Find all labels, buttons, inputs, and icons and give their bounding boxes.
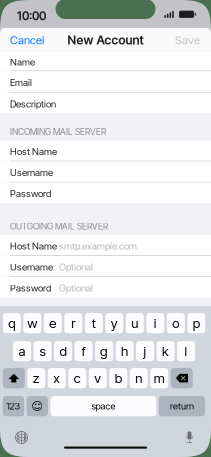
staticText: t <box>92 315 96 331</box>
staticText: smtp.example.com <box>59 240 137 252</box>
button[interactable]: a <box>13 341 31 361</box>
button[interactable]: e <box>44 313 62 333</box>
button[interactable]: f <box>75 341 93 361</box>
staticText: New Account <box>67 33 143 47</box>
staticText: OUTGOING MAIL SERVER <box>10 221 108 232</box>
staticText: c <box>74 370 81 386</box>
button[interactable]: Emoji <box>27 396 48 416</box>
staticText: z <box>33 370 40 386</box>
staticText: f <box>82 343 86 359</box>
staticText: m <box>154 370 165 386</box>
staticText: Username <box>10 167 53 178</box>
staticText: space <box>91 400 115 412</box>
button[interactable]: j <box>136 341 154 361</box>
staticText: Host Name <box>10 146 57 157</box>
button[interactable]: Username <box>0 256 211 276</box>
staticText: w <box>27 315 37 331</box>
button[interactable]: x <box>48 368 66 388</box>
button[interactable]: b <box>109 368 127 388</box>
staticText: y <box>111 315 118 331</box>
button[interactable]: o <box>167 313 185 333</box>
button[interactable]: p <box>187 313 205 333</box>
button[interactable]: Save <box>164 28 211 52</box>
staticText: o <box>172 315 179 331</box>
button[interactable]: 123 <box>3 396 24 416</box>
button[interactable]: Email <box>0 71 211 92</box>
staticText: p <box>193 315 200 331</box>
button[interactable]: h <box>116 341 134 361</box>
staticText: a <box>19 343 26 359</box>
button[interactable]: r <box>64 313 82 333</box>
button[interactable]: Delete <box>171 368 193 388</box>
staticText: r <box>71 315 75 331</box>
button[interactable]: n <box>130 368 148 388</box>
staticText: v <box>94 370 101 386</box>
staticText: h <box>121 343 128 359</box>
button[interactable]: Host Name <box>0 235 211 255</box>
staticText: Description <box>10 98 56 110</box>
staticText: Username <box>10 261 53 273</box>
staticText: Email <box>10 77 32 88</box>
staticText: d <box>60 343 67 359</box>
staticText: l <box>185 343 188 359</box>
staticText: Optional <box>59 282 93 294</box>
button[interactable]: g <box>95 341 113 361</box>
button[interactable]: Next keyboard <box>14 430 28 444</box>
button[interactable]: i <box>146 313 164 333</box>
button[interactable]: c <box>68 368 86 388</box>
button[interactable]: Host Name <box>0 140 211 161</box>
button[interactable]: Password <box>0 183 211 203</box>
button[interactable]: k <box>157 341 175 361</box>
staticText: n <box>135 370 142 386</box>
staticText: Cancel <box>10 33 44 47</box>
staticText: INCOMING MAIL SERVER <box>10 126 106 137</box>
button[interactable]: Cancel <box>0 28 54 52</box>
staticText: x <box>53 370 60 386</box>
button[interactable]: z <box>27 368 45 388</box>
button[interactable]: u <box>126 313 144 333</box>
staticText: ☺ <box>31 399 43 413</box>
button[interactable]: Shift <box>3 368 25 388</box>
staticText: j <box>144 343 147 359</box>
staticText: u <box>131 315 138 331</box>
staticText: Host Name <box>10 240 57 252</box>
staticText: Save <box>175 33 200 47</box>
staticText: Name <box>10 56 35 68</box>
button[interactable]: l <box>177 341 195 361</box>
staticText: return <box>170 400 194 412</box>
staticText: 123 <box>6 400 20 412</box>
button[interactable]: v <box>89 368 107 388</box>
button[interactable]: m <box>150 368 168 388</box>
button[interactable]: Description <box>0 93 211 113</box>
staticText: Password <box>10 282 51 294</box>
staticText: k <box>162 343 169 359</box>
button[interactable]: s <box>34 341 52 361</box>
button[interactable]: q <box>3 313 21 333</box>
button[interactable]: Name <box>0 52 211 70</box>
button[interactable]: return <box>159 396 205 416</box>
button[interactable]: d <box>54 341 72 361</box>
button[interactable]: Dictation <box>184 431 195 443</box>
button[interactable]: Username <box>0 161 211 182</box>
staticText: Password <box>10 188 51 199</box>
button[interactable]: t <box>85 313 103 333</box>
staticText: e <box>49 315 56 331</box>
staticText: i <box>154 315 157 331</box>
staticText: b <box>115 370 122 386</box>
button[interactable]: Password <box>0 277 211 297</box>
staticText: 10:00 <box>17 9 46 23</box>
staticText: Optional <box>59 261 93 273</box>
staticText: q <box>8 315 15 331</box>
button[interactable]: space <box>50 396 156 416</box>
button[interactable]: y <box>105 313 123 333</box>
staticText: g <box>100 343 108 359</box>
button[interactable]: w <box>23 313 41 333</box>
staticText: s <box>40 343 46 359</box>
